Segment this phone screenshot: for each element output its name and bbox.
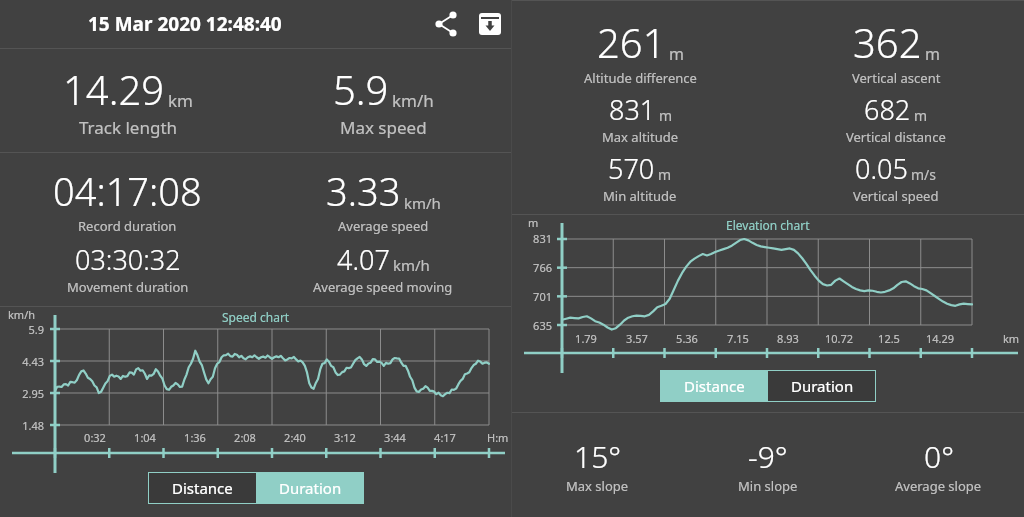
staticText: Distance bbox=[172, 478, 233, 498]
staticText: 5.9 bbox=[333, 62, 389, 116]
staticText: 0.05 bbox=[855, 150, 908, 187]
staticText: Max slope bbox=[566, 477, 629, 495]
staticText: 4.43 bbox=[0, 354, 44, 369]
staticText: Average slope bbox=[895, 477, 982, 495]
staticText: km/h bbox=[404, 193, 441, 213]
staticText: 0:32 bbox=[75, 430, 115, 445]
button[interactable]: Distance bbox=[148, 472, 256, 504]
staticText: Track length bbox=[79, 116, 178, 139]
staticText: -9° bbox=[748, 436, 788, 477]
staticText: 8.93 bbox=[766, 331, 810, 346]
staticText: 4.07 bbox=[337, 241, 390, 278]
staticText: 5.9 bbox=[0, 322, 44, 337]
staticText: 14.29 bbox=[918, 331, 962, 346]
staticText: Vertical speed bbox=[853, 187, 939, 205]
staticText: 682 bbox=[864, 91, 911, 128]
staticText: 635 bbox=[512, 318, 552, 333]
staticText: 701 bbox=[512, 289, 552, 304]
staticText: Record duration bbox=[78, 217, 177, 235]
staticText: Max speed bbox=[340, 116, 427, 139]
staticText: 3:12 bbox=[325, 430, 365, 445]
staticText: m bbox=[528, 215, 539, 230]
staticText: km/h bbox=[393, 255, 430, 275]
button[interactable]: Archive bbox=[472, 6, 508, 42]
staticText: 261 bbox=[597, 15, 666, 69]
staticText: Average speed moving bbox=[313, 278, 453, 296]
staticText: Duration bbox=[279, 478, 342, 498]
staticText: km/h bbox=[392, 89, 434, 112]
staticText: 1:04 bbox=[125, 430, 165, 445]
button[interactable]: Duration bbox=[768, 370, 876, 402]
staticText: 4:17 bbox=[425, 430, 465, 445]
staticText: Min slope bbox=[738, 477, 798, 495]
staticText: km/h bbox=[8, 307, 36, 322]
staticText: 5.36 bbox=[665, 331, 709, 346]
staticText: km bbox=[1003, 331, 1020, 346]
staticText: 570 bbox=[608, 150, 655, 187]
staticText: 1.79 bbox=[564, 331, 608, 346]
button[interactable]: Distance bbox=[660, 370, 768, 402]
staticText: m/s bbox=[911, 165, 937, 184]
staticText: 10.72 bbox=[817, 331, 861, 346]
staticText: Max altitude bbox=[602, 128, 679, 146]
staticText: 15° bbox=[574, 436, 622, 477]
staticText: Distance bbox=[684, 376, 745, 396]
staticText: Vertical distance bbox=[846, 128, 946, 146]
staticText: 1.48 bbox=[0, 418, 44, 433]
staticText: m bbox=[914, 106, 928, 125]
staticText: 04:17:08 bbox=[53, 165, 202, 217]
staticText: 2:08 bbox=[225, 430, 265, 445]
staticText: 7.15 bbox=[716, 331, 760, 346]
button[interactable]: Share bbox=[428, 6, 464, 42]
staticText: m bbox=[658, 165, 672, 184]
staticText: m bbox=[925, 43, 940, 65]
staticText: Speed chart bbox=[222, 309, 290, 325]
staticText: Min altitude bbox=[603, 187, 677, 205]
staticText: 1:36 bbox=[175, 430, 215, 445]
staticText: 14.29 bbox=[63, 62, 165, 116]
staticText: 766 bbox=[512, 260, 552, 275]
staticText: Duration bbox=[791, 376, 854, 396]
staticText: 3.33 bbox=[326, 165, 401, 217]
staticText: 0° bbox=[924, 436, 954, 477]
staticText: km bbox=[168, 89, 193, 112]
staticText: 831 bbox=[512, 231, 552, 246]
staticText: Vertical ascent bbox=[852, 69, 941, 87]
staticText: m bbox=[659, 106, 673, 125]
staticText: m bbox=[669, 43, 684, 65]
staticText: Altitude difference bbox=[584, 69, 697, 87]
staticText: Average speed bbox=[338, 217, 429, 235]
staticText: 2.95 bbox=[0, 386, 44, 401]
staticText: Movement duration bbox=[67, 278, 189, 296]
staticText: H:m bbox=[487, 430, 509, 445]
staticText: 12.5 bbox=[867, 331, 911, 346]
staticText: 2:40 bbox=[275, 430, 315, 445]
staticText: Elevation chart bbox=[726, 217, 810, 233]
staticText: 15 Mar 2020 12:48:40 bbox=[88, 11, 282, 37]
staticText: 3:44 bbox=[375, 430, 415, 445]
staticText: 3.57 bbox=[615, 331, 659, 346]
staticText: 03:30:32 bbox=[75, 241, 181, 278]
staticText: 831 bbox=[609, 91, 656, 128]
staticText: 362 bbox=[853, 15, 922, 69]
button[interactable]: Duration bbox=[256, 472, 364, 504]
